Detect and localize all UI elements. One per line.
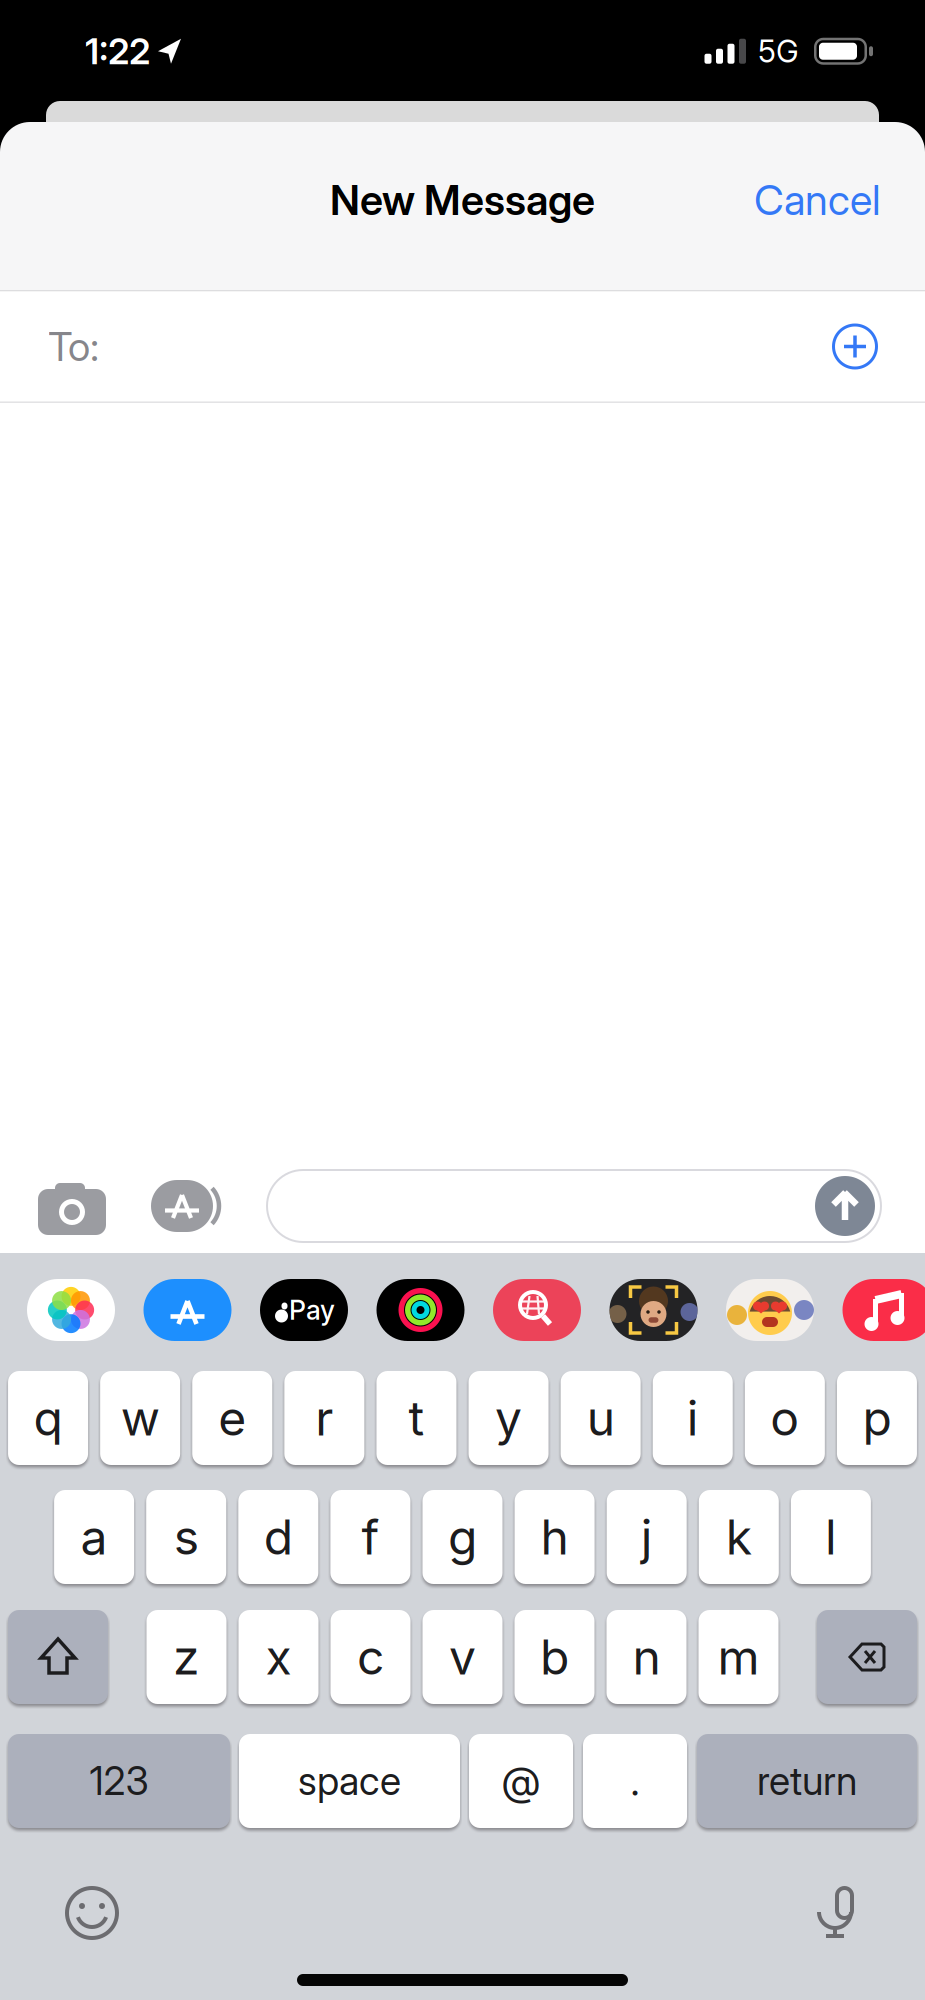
button[interactable]: u [561,1371,641,1465]
staticText: a [81,1509,108,1565]
staticText: 123 [89,1758,148,1804]
button[interactable]: Apple Pay [260,1279,348,1341]
button[interactable]: q [8,1371,88,1465]
staticText: x [265,1629,291,1685]
button[interactable]: Message field [266,1169,882,1243]
button[interactable]: m [698,1610,778,1704]
staticText: . [630,1757,639,1805]
staticText: Cancel [754,176,881,224]
staticText: w [121,1390,160,1446]
staticText: e [218,1390,246,1446]
button[interactable]: Delete [817,1610,917,1704]
button[interactable]: Shift [8,1610,108,1704]
staticText: space [298,1758,401,1804]
button[interactable]: s [146,1490,226,1584]
button[interactable]: e [192,1371,272,1465]
staticText: 1:22 [85,30,150,72]
button[interactable]: space [239,1734,460,1828]
button[interactable]: r [284,1371,364,1465]
staticText: q [34,1390,63,1446]
staticText: return [757,1758,857,1804]
staticText: h [541,1509,569,1565]
staticText: i [687,1390,699,1446]
staticText: n [632,1629,660,1685]
button[interactable]: #images [493,1279,581,1341]
staticText: g [448,1509,477,1565]
staticText: k [726,1509,752,1565]
button[interactable]: Memoji Stickers [609,1279,697,1341]
staticText: 5G [758,33,799,69]
button[interactable]: @ [469,1734,573,1828]
button[interactable]: a [54,1490,134,1584]
staticText: Pay [289,1294,335,1326]
staticText: c [357,1629,384,1685]
button[interactable]: x [238,1610,318,1704]
staticText: o [770,1390,799,1446]
staticText: m [717,1629,759,1685]
button[interactable]: g [422,1490,502,1584]
staticText: p [862,1390,891,1446]
staticText: d [264,1509,293,1565]
button[interactable]: j [607,1490,687,1584]
button[interactable]: b [514,1610,594,1704]
button[interactable]: p [837,1371,917,1465]
staticText: z [173,1629,200,1685]
button[interactable]: Animoji [726,1279,814,1341]
button[interactable]: Cancel [754,176,881,224]
button[interactable]: 123 [8,1734,230,1828]
button[interactable]: App Store [143,1279,231,1341]
button[interactable]: Emoji [65,1886,119,1940]
button[interactable]: y [469,1371,549,1465]
staticText: y [495,1390,522,1446]
button[interactable]: Add Contact [832,323,878,369]
button[interactable]: d [238,1490,318,1584]
button[interactable]: c [330,1610,410,1704]
button[interactable]: k [699,1490,779,1584]
button[interactable]: v [422,1610,502,1704]
button[interactable]: Dictation [816,1886,854,1942]
staticText: f [361,1509,379,1565]
staticText: s [174,1509,199,1565]
button[interactable]: n [606,1610,686,1704]
button[interactable]: o [745,1371,825,1465]
staticText: @ [501,1757,540,1805]
button[interactable]: z [146,1610,226,1704]
staticText: To: [48,323,99,370]
staticText: v [449,1629,476,1685]
button[interactable]: h [515,1490,595,1584]
button[interactable]: f [330,1490,410,1584]
button[interactable]: l [791,1490,871,1584]
button[interactable]: Send [815,1176,875,1236]
staticText: b [540,1629,569,1685]
button[interactable]: return [697,1734,917,1828]
button[interactable]: i [653,1371,733,1465]
button[interactable]: t [376,1371,456,1465]
staticText: l [825,1509,837,1565]
button[interactable]: . [583,1734,687,1828]
staticText: j [641,1509,653,1565]
button[interactable]: Fitness [376,1279,464,1341]
staticText: New Message [330,176,595,224]
staticText: t [408,1390,424,1446]
staticText: u [587,1390,615,1446]
button[interactable]: Photos [27,1279,115,1341]
button[interactable]: Camera [38,1180,106,1232]
button[interactable]: Music [842,1279,925,1341]
staticText: r [315,1390,333,1446]
button[interactable]: Apps [151,1180,225,1232]
button[interactable]: w [100,1371,180,1465]
